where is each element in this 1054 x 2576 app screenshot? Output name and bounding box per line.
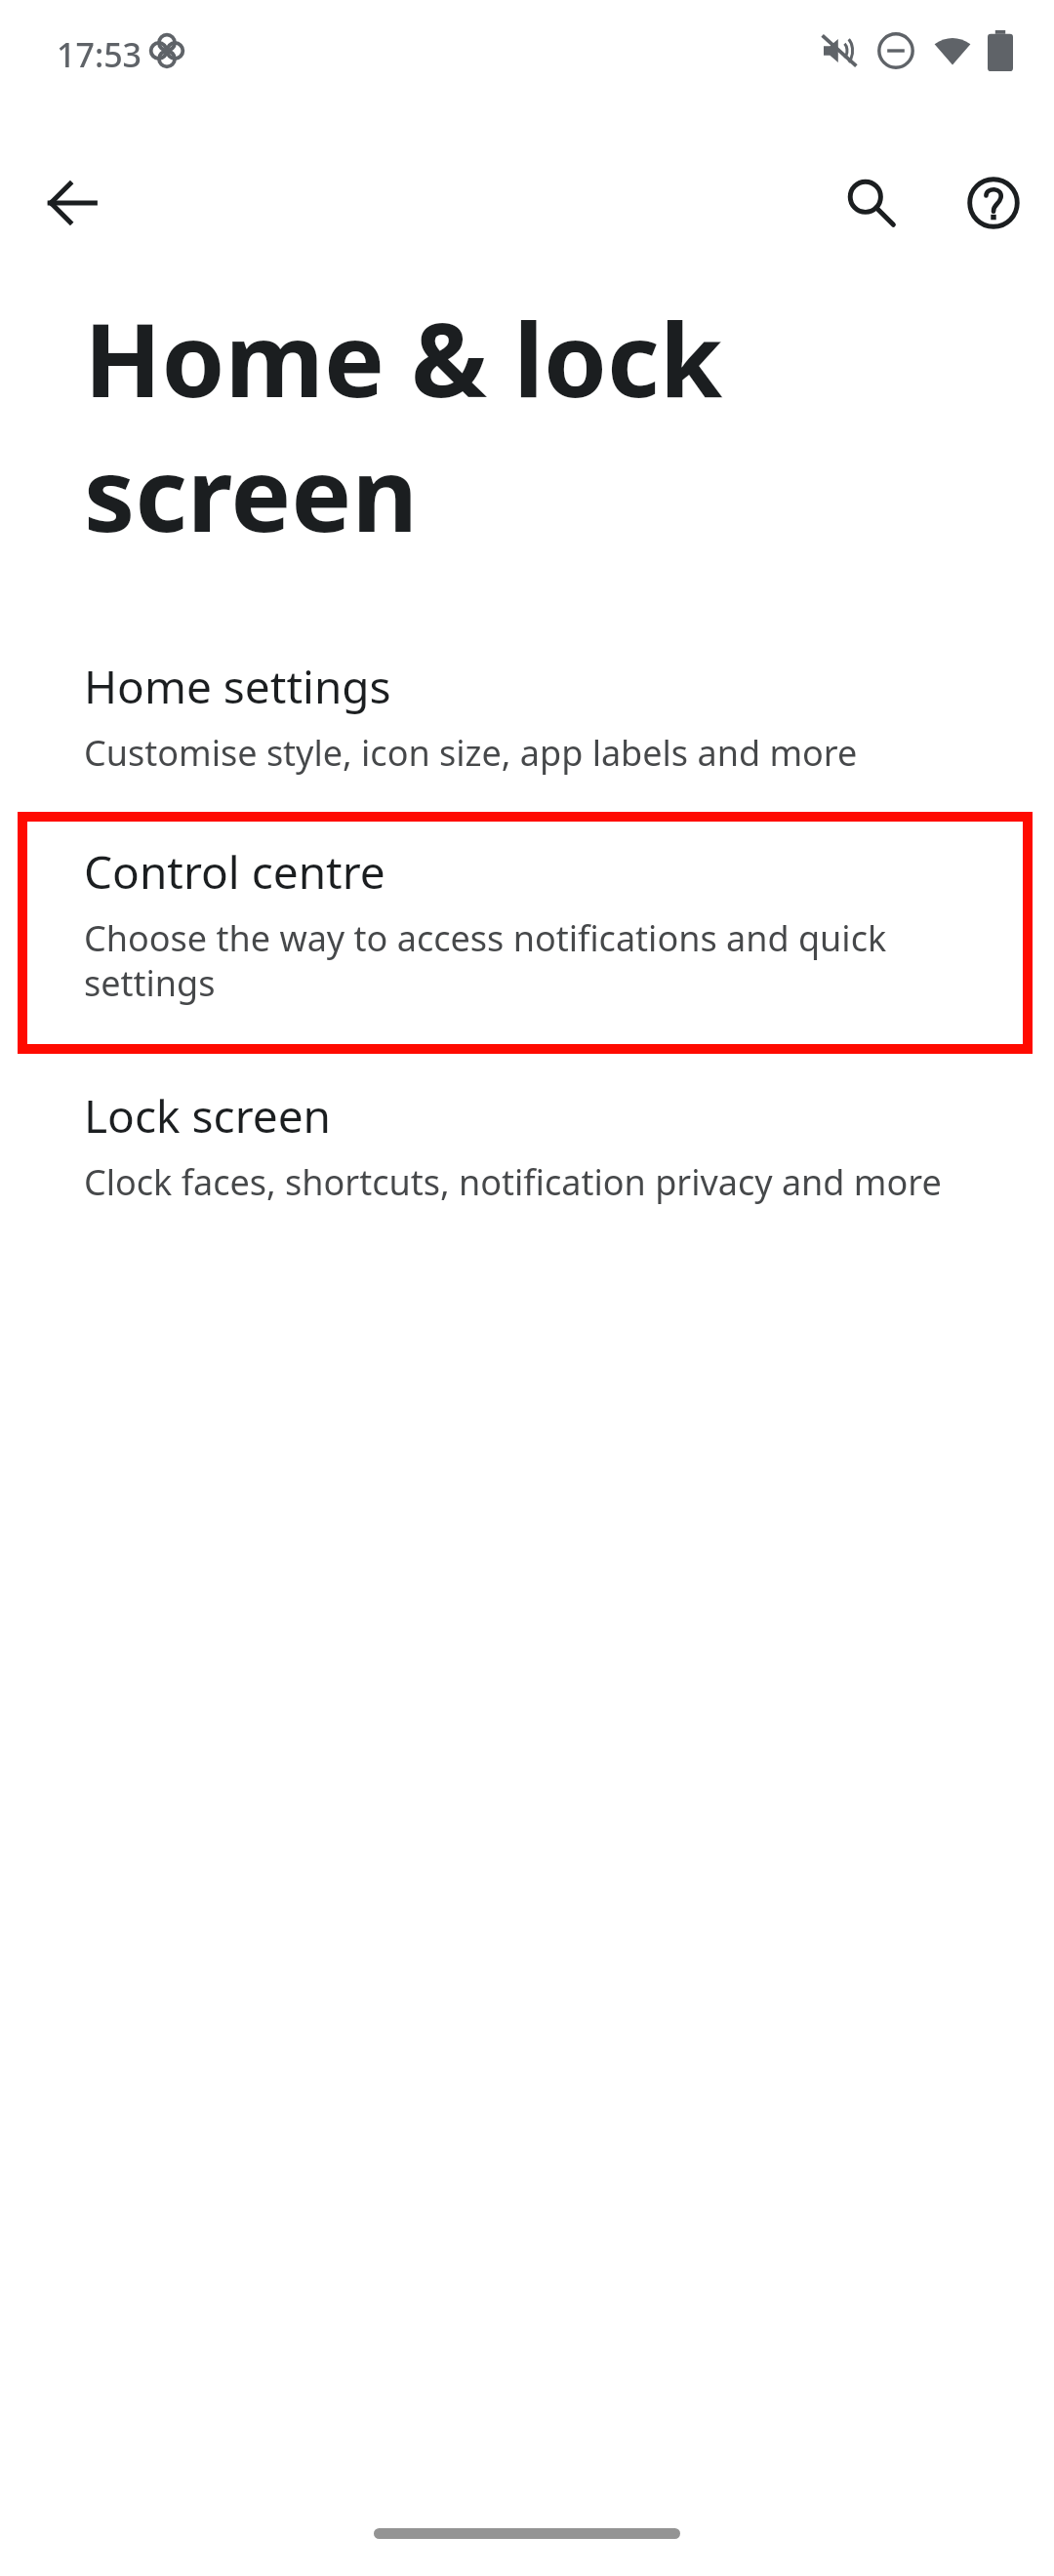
staticText: 17:53 [57,32,142,77]
button[interactable]: Back [25,156,119,250]
button[interactable]: Control centre [18,812,1033,1054]
staticText: Customise style, icon size, app labels a… [84,729,858,777]
staticText: Home & lock screen [84,289,878,562]
staticText: Lock screen [84,1085,332,1147]
button[interactable]: Home settings [0,648,1054,785]
button[interactable]: Search [824,156,917,250]
staticText: Choose the way to access notifications a… [84,914,974,1007]
button[interactable]: Help [947,156,1040,250]
button[interactable]: Lock screen [0,1077,1054,1214]
staticText: Home settings [84,656,391,717]
staticText: Control centre [84,841,385,903]
staticText: Clock faces, shortcuts, notification pri… [84,1158,942,1206]
